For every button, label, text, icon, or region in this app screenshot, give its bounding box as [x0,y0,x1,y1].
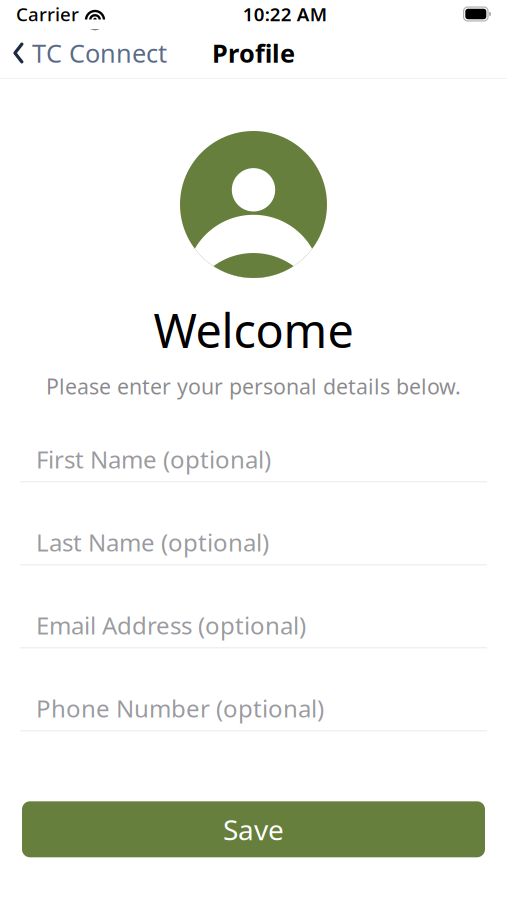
staticText: Welcome [153,299,353,361]
staticText: Email Address (optional) [36,609,306,641]
button[interactable]: Save [22,801,485,857]
staticText: 10:22 AM [243,2,327,26]
button[interactable]: TC Connect [0,28,175,78]
staticText: Last Name (optional) [36,526,269,558]
staticText: Profile [212,36,295,70]
staticText: Please enter your personal details below… [46,372,461,400]
staticText: Save [223,811,284,848]
staticText: Carrier [16,2,79,26]
staticText: Phone Number (optional) [36,692,324,724]
staticText: First Name (optional) [36,443,271,475]
staticText: TC Connect [32,36,167,70]
